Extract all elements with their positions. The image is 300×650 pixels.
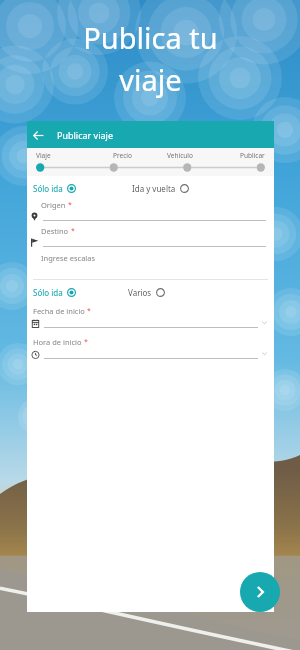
staticText: Origen — [41, 200, 66, 210]
staticText: Ingrese escalas — [41, 253, 96, 263]
staticText: * — [71, 226, 75, 236]
staticText: Hora de inicio — [33, 337, 82, 347]
staticText: Sólo ida — [33, 287, 63, 298]
button[interactable]: Varios — [128, 287, 165, 298]
staticText: Fecha de inicio — [33, 306, 85, 316]
staticText: Varios — [128, 287, 152, 298]
button[interactable]: Sólo ida — [33, 287, 76, 298]
staticText: Precio — [113, 151, 132, 160]
button[interactable]: Hora de inicio — [27, 337, 274, 359]
staticText: Viaje — [36, 151, 51, 160]
staticText: Destino — [41, 226, 69, 236]
staticText: Publicar viaje — [57, 129, 113, 141]
button[interactable]: Fecha de inicio — [27, 306, 274, 328]
staticText: Publica tu — [83, 18, 218, 57]
button[interactable]: Siguiente — [240, 572, 280, 612]
staticText: Publicar — [240, 151, 265, 160]
button[interactable]: Ida y vuelta — [132, 183, 189, 194]
staticText: * — [84, 337, 88, 347]
staticText: * — [87, 306, 91, 316]
button[interactable]: Origen — [27, 200, 274, 221]
staticText: Sólo ida — [33, 183, 63, 194]
staticText: Vehículo — [167, 151, 193, 160]
staticText: Ida y vuelta — [132, 183, 176, 194]
button[interactable]: Destino — [27, 226, 274, 247]
staticText: * — [68, 200, 72, 210]
button[interactable]: Sólo ida — [33, 183, 76, 194]
staticText: viaje — [119, 60, 182, 99]
button[interactable]: Atrás — [27, 124, 49, 146]
